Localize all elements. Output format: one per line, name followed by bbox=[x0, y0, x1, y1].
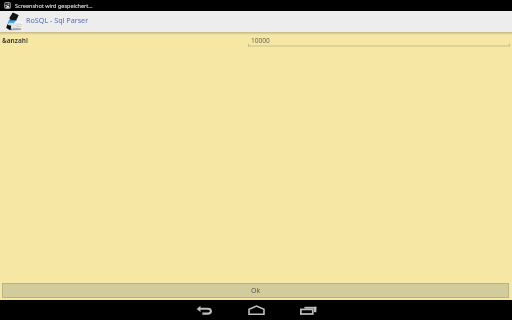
staticText: RoSQL - Sql Parser bbox=[26, 15, 89, 25]
staticText: 10000 bbox=[251, 36, 270, 45]
button[interactable]: Back bbox=[186, 300, 222, 320]
button[interactable]: Ok bbox=[3, 284, 508, 297]
staticText: Ok bbox=[251, 286, 261, 296]
staticText: &anzahl bbox=[2, 36, 28, 45]
staticText: Screenshot wird gespeichert… bbox=[15, 2, 93, 9]
button[interactable]: RoSQL - Sql Parser bbox=[0, 11, 512, 32]
button[interactable]: 10000 bbox=[248, 36, 510, 50]
button[interactable]: Home bbox=[238, 300, 274, 320]
button[interactable]: Recent apps bbox=[290, 300, 326, 320]
